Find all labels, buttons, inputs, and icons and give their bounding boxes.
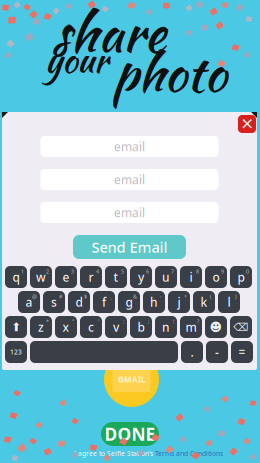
staticText: 5 <box>121 268 124 275</box>
staticText: 1 <box>21 268 24 275</box>
button[interactable]: : <box>105 316 127 338</box>
button[interactable]: - <box>143 291 165 313</box>
staticText: email <box>114 204 145 220</box>
staticText: s <box>51 294 57 310</box>
staticText: # <box>59 293 62 300</box>
button[interactable]: 3 <box>55 266 77 288</box>
staticText: o <box>212 269 219 285</box>
staticText: 8 <box>196 268 199 275</box>
button[interactable]: 1 <box>5 266 27 288</box>
staticText: a <box>25 294 32 310</box>
staticText: Terms and Conditions <box>155 449 223 458</box>
button[interactable]: & <box>118 291 140 313</box>
staticText: ) <box>235 293 237 300</box>
staticText: 2 <box>46 268 49 275</box>
button[interactable]: ! <box>155 316 177 338</box>
staticText: @ <box>32 293 37 300</box>
staticText: photo <box>113 36 226 109</box>
staticText: = <box>238 344 245 360</box>
button[interactable]: $ <box>68 291 90 313</box>
button[interactable]: " <box>55 316 77 338</box>
staticText: ! <box>173 318 174 325</box>
staticText: e <box>62 269 69 285</box>
staticText: b <box>137 319 144 335</box>
staticText: n <box>162 319 170 335</box>
staticText: t <box>113 269 118 285</box>
staticText: u <box>162 269 170 285</box>
staticText: $ <box>84 293 87 300</box>
staticText: d <box>75 294 82 310</box>
staticText: g <box>125 294 132 310</box>
button[interactable] <box>206 341 228 363</box>
button[interactable]: @ <box>18 291 40 313</box>
staticText: j <box>177 294 180 310</box>
button[interactable]: 4 <box>80 266 102 288</box>
staticText: p <box>237 269 244 285</box>
button[interactable]: 0 <box>230 266 252 288</box>
staticText: x <box>62 319 69 335</box>
button[interactable]: * <box>30 316 52 338</box>
staticText: f <box>102 294 106 310</box>
staticText: m <box>185 319 196 335</box>
button[interactable] <box>30 341 178 363</box>
button[interactable]: # <box>43 291 65 313</box>
staticText: l <box>227 294 230 310</box>
button[interactable]: ) <box>218 291 240 313</box>
button[interactable]: 9 <box>205 266 227 288</box>
staticText: GMAIL <box>118 374 145 385</box>
staticText: " <box>72 318 74 325</box>
staticText: c <box>88 319 94 335</box>
staticText: ☻ <box>209 320 222 334</box>
staticText: 4 <box>96 268 99 275</box>
button[interactable]: _ <box>93 291 115 313</box>
button[interactable]: Close <box>238 115 256 133</box>
button[interactable]: ( <box>193 291 215 313</box>
staticText: 123 <box>10 348 22 356</box>
button[interactable] <box>230 316 252 338</box>
staticText: z <box>38 319 44 335</box>
staticText: ⌫ <box>233 321 248 333</box>
staticText: 3 <box>71 268 74 275</box>
staticText: w <box>36 269 46 285</box>
staticText: v <box>113 319 119 335</box>
button[interactable]: Send Email <box>73 235 186 259</box>
button[interactable] <box>5 341 27 363</box>
staticText: ( <box>210 293 212 300</box>
button[interactable] <box>5 316 27 338</box>
staticText: 6 <box>146 268 149 275</box>
staticText: 9 <box>221 268 224 275</box>
button[interactable]: 2 <box>30 266 52 288</box>
staticText: ✕ <box>240 115 253 133</box>
staticText: - <box>160 293 162 300</box>
staticText: 7 <box>171 268 174 275</box>
staticText: _ <box>110 293 112 300</box>
staticText: . <box>190 344 193 360</box>
button[interactable]: 5 <box>105 266 127 288</box>
button[interactable] <box>231 341 253 363</box>
staticText: I agree to Selfie Station's <box>74 449 153 458</box>
staticText: - <box>215 344 219 360</box>
button[interactable]: DONE <box>101 422 159 446</box>
staticText: h <box>150 294 158 310</box>
button[interactable] <box>181 341 203 363</box>
button[interactable] <box>205 316 227 338</box>
staticText: ; <box>148 318 149 325</box>
button[interactable]: ; <box>130 316 152 338</box>
staticText: ⬆ <box>11 320 21 334</box>
staticText: + <box>184 293 187 300</box>
button[interactable]: 7 <box>155 266 177 288</box>
staticText: your <box>45 35 108 85</box>
staticText: q <box>12 269 19 285</box>
button[interactable]: 8 <box>180 266 202 288</box>
staticText: Send Email <box>91 237 167 257</box>
staticText: * <box>46 318 49 325</box>
staticText: ' <box>98 318 99 325</box>
staticText: DONE <box>104 422 155 445</box>
staticText: r <box>88 269 93 285</box>
button[interactable]: ' <box>80 316 102 338</box>
staticText: i <box>189 269 192 285</box>
button[interactable]: 6 <box>130 266 152 288</box>
button[interactable]: ? <box>180 316 202 338</box>
button[interactable]: + <box>168 291 190 313</box>
staticText: k <box>200 294 207 310</box>
